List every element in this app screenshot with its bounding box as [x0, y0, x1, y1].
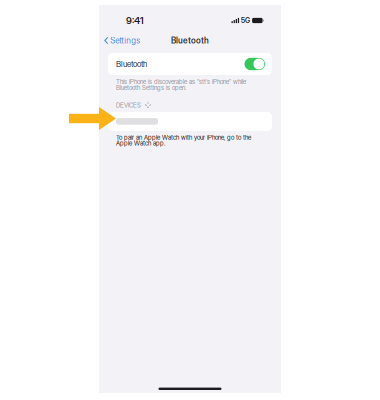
staticText: To pair an Apple Watch with your iPhone,… — [116, 134, 251, 147]
staticText: DEVICES — [116, 101, 141, 109]
staticText: Settings — [110, 35, 140, 45]
staticText: 5G — [241, 16, 250, 25]
button[interactable]: Settings — [102, 33, 142, 47]
staticText: This iPhone is discoverable as “stt’s iP… — [116, 78, 246, 91]
staticText: Bluetooth — [116, 59, 147, 69]
staticText: 9:41 — [126, 15, 144, 26]
staticText: Bluetooth — [171, 35, 209, 45]
button[interactable]: Bluetooth — [108, 53, 272, 75]
button[interactable] — [108, 112, 272, 131]
